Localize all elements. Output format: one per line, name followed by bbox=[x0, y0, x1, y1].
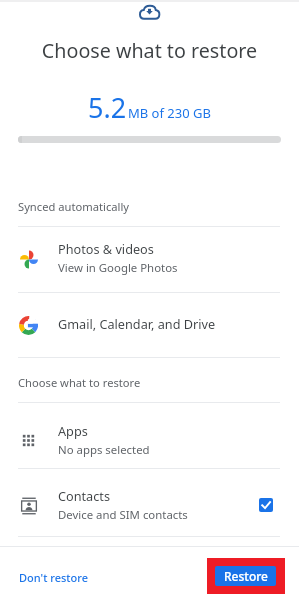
staticText: Apps bbox=[58, 422, 88, 439]
button[interactable]: Restore contacts, checked bbox=[259, 498, 273, 512]
staticText: Device and SIM contacts bbox=[58, 507, 188, 523]
button[interactable]: Restore bbox=[215, 566, 276, 586]
staticText: Photos & videos bbox=[58, 240, 154, 257]
button[interactable]: Photos & videos bbox=[0, 227, 299, 292]
staticText: Gmail, Calendar, and Drive bbox=[58, 315, 216, 332]
staticText: MB of 230 GB bbox=[128, 104, 211, 122]
button[interactable]: Gmail, Calendar, and Drive bbox=[0, 293, 299, 357]
staticText: Synced automatically bbox=[18, 199, 130, 214]
staticText: Don't restore bbox=[19, 570, 89, 585]
button[interactable]: Don't restore bbox=[14, 562, 94, 589]
staticText: No apps selected bbox=[58, 442, 150, 458]
staticText: Restore bbox=[224, 568, 268, 584]
staticText: Choose what to restore bbox=[0, 37, 299, 64]
staticText: Choose what to restore bbox=[18, 375, 141, 390]
staticText: Contacts bbox=[58, 487, 110, 504]
button[interactable]: Apps bbox=[0, 403, 299, 468]
staticText: 5.2 bbox=[88, 89, 127, 126]
staticText: View in Google Photos bbox=[58, 260, 178, 276]
button[interactable]: Contacts bbox=[0, 469, 299, 536]
